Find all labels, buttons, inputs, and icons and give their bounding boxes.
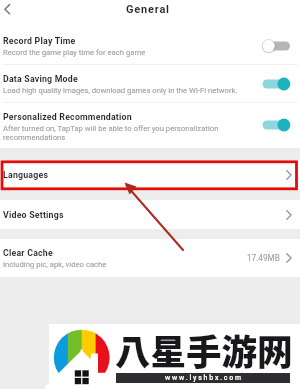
button[interactable]: Record Play Time <box>0 30 300 63</box>
button[interactable]: Data Saving Mode on <box>261 77 292 91</box>
staticText: recommendations <box>3 133 66 142</box>
staticText: Load high quality images, download games… <box>3 86 238 95</box>
staticText: Video Settings <box>3 210 64 220</box>
staticText: Clear Cache <box>3 248 53 258</box>
button[interactable]: Personalized Recommendation on <box>261 118 292 132</box>
button[interactable]: Personalized Recommendation <box>0 106 300 146</box>
staticText: Data Saving Mode <box>3 74 78 84</box>
staticText: Including pic, apk, video cache <box>3 260 107 269</box>
staticText: Languages <box>3 170 49 180</box>
button[interactable]: Data Saving Mode <box>0 68 300 101</box>
button[interactable]: Record Play Time off <box>261 39 292 53</box>
staticText: Record the game play time for each game <box>3 48 146 57</box>
button[interactable]: Clear Cache <box>0 239 300 277</box>
staticText: 八星手游网 <box>115 324 293 375</box>
staticText: w w w . l y s h b x . c o m <box>165 374 242 382</box>
staticText: Personalized Recommendation <box>3 112 132 122</box>
staticText: Record Play Time <box>3 36 76 46</box>
staticText: General <box>126 3 170 16</box>
button[interactable]: Languages <box>0 160 300 190</box>
staticText: After turned on, TapTap will be able to … <box>3 124 219 133</box>
button[interactable]: Video Settings <box>0 200 300 229</box>
staticText: 17.49MB <box>247 253 280 263</box>
button[interactable]: Back <box>0 0 18 18</box>
